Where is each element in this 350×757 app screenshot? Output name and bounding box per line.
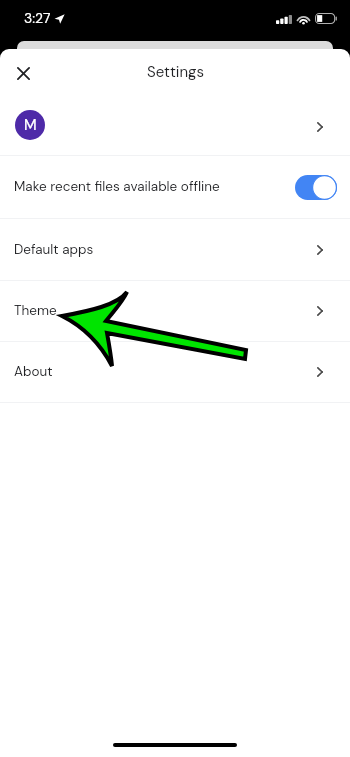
staticText: Theme <box>14 302 57 320</box>
staticText: Make recent files available offline <box>14 178 220 196</box>
staticText: M <box>24 115 37 135</box>
staticText: 3:27 <box>24 9 51 27</box>
staticText: Settings <box>147 62 204 82</box>
button[interactable]: Theme <box>0 281 350 341</box>
button[interactable]: Make recent files available offline <box>0 156 350 218</box>
button[interactable]: Close <box>5 54 41 90</box>
button[interactable]: M <box>0 95 350 155</box>
staticText: About <box>14 363 53 381</box>
button[interactable]: About <box>0 342 350 402</box>
button[interactable]: Default apps <box>0 219 350 280</box>
staticText: Default apps <box>14 241 94 259</box>
